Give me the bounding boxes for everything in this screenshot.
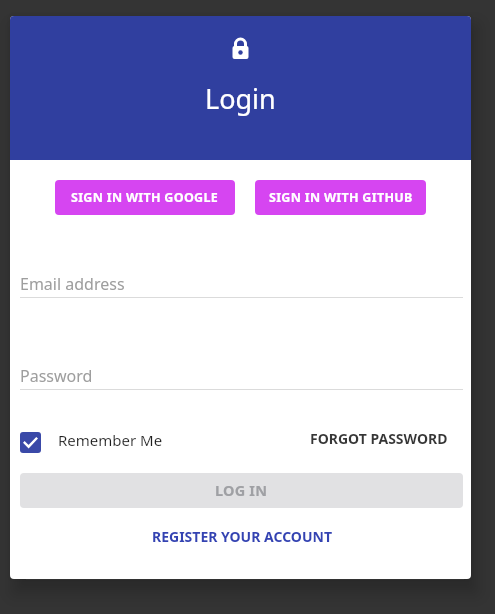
staticText: SIGN IN WITH GOOGLE xyxy=(71,189,219,206)
button[interactable]: SIGN IN WITH GITHUB xyxy=(255,180,426,215)
button[interactable]: FORGOT PASSWORD xyxy=(295,423,448,453)
staticText: Email address xyxy=(20,273,125,295)
staticText: Password xyxy=(20,365,93,387)
button[interactable]: SIGN IN WITH GOOGLE xyxy=(55,180,235,215)
button[interactable] xyxy=(20,432,41,453)
staticText: LOG IN xyxy=(215,480,268,500)
staticText: Remember Me xyxy=(58,430,163,450)
staticText: FORGOT PASSWORD xyxy=(310,429,448,448)
staticText: SIGN IN WITH GITHUB xyxy=(269,189,413,206)
button[interactable]: REGISTER YOUR ACCOUNT xyxy=(121,521,362,551)
button[interactable]: LOG IN xyxy=(20,473,463,508)
staticText: Login xyxy=(205,80,276,117)
staticText: REGISTER YOUR ACCOUNT xyxy=(152,527,332,546)
